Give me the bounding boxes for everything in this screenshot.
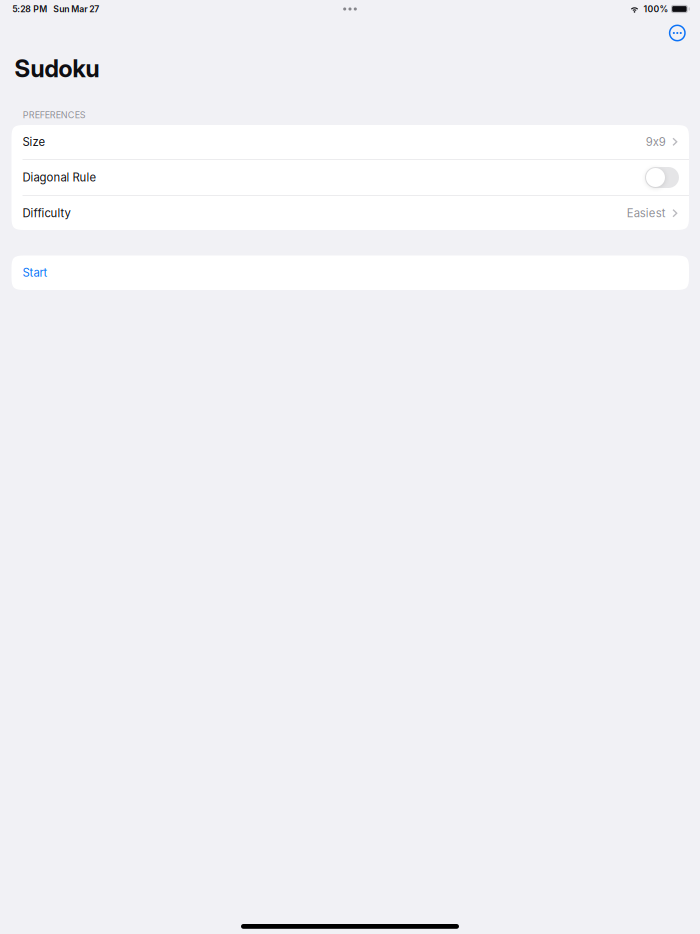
button[interactable]: Diagonal Rule bbox=[645, 167, 679, 188]
button[interactable]: Size bbox=[11, 124, 689, 159]
staticText: Sudoku bbox=[15, 54, 100, 83]
button[interactable]: Start bbox=[11, 255, 689, 290]
staticText: PREFERENCES bbox=[23, 109, 86, 120]
staticText: 9x9 bbox=[646, 135, 666, 149]
staticText: 5:28 PM bbox=[12, 4, 47, 14]
button[interactable]: Difficulty bbox=[11, 196, 689, 231]
staticText: Easiest bbox=[627, 206, 666, 220]
staticText: Start bbox=[22, 266, 47, 280]
staticText: Size bbox=[22, 135, 45, 149]
staticText: Diagonal Rule bbox=[22, 171, 96, 184]
staticText: Difficulty bbox=[22, 206, 70, 220]
button[interactable]: More options bbox=[663, 18, 692, 48]
staticText: Sun Mar 27 bbox=[53, 4, 99, 14]
staticText: 100% bbox=[643, 4, 668, 14]
